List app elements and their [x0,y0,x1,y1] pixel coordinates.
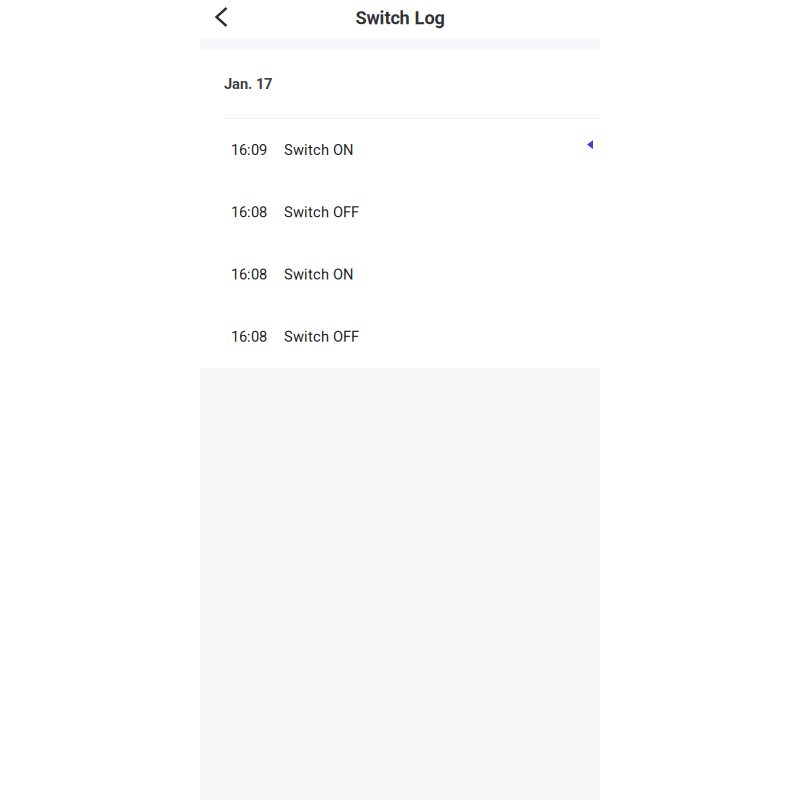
staticText: Jan. 17 [224,75,272,93]
staticText: 16:08 [231,204,267,221]
staticText: 16:08 [231,328,267,345]
button[interactable]: 16:08 [200,243,600,306]
navigationBar: Switch Log [200,0,600,39]
staticText: 16:09 [231,141,267,159]
staticText: Switch OFF [284,328,359,345]
staticText: Switch Log [355,7,444,29]
button[interactable]: 16:08 [200,306,600,368]
staticText: Switch ON [284,141,353,159]
button[interactable]: 16:09 [200,119,600,181]
staticText: Switch ON [284,266,353,283]
staticText: 16:08 [231,266,267,283]
button[interactable]: Back [200,0,240,34]
staticText: Switch OFF [284,204,359,221]
button[interactable]: 16:08 [200,181,600,243]
